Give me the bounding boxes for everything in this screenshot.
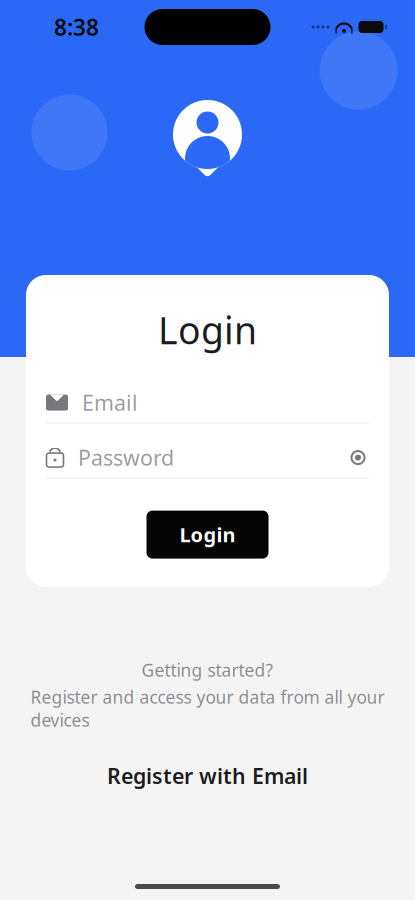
- button[interactable]: Register with Email: [89, 754, 326, 798]
- staticText: Email: [82, 388, 138, 417]
- staticText: Password: [78, 443, 174, 472]
- staticText: Login: [179, 521, 235, 548]
- button[interactable]: Login: [146, 511, 268, 559]
- staticText: Getting started?: [141, 659, 273, 682]
- staticText: Login: [158, 305, 257, 355]
- button[interactable]: Email: [26, 383, 389, 424]
- button[interactable]: Password: [26, 438, 389, 479]
- staticText: 8:38: [54, 12, 99, 42]
- staticText: Register and access your data from all y…: [30, 686, 384, 732]
- staticText: Register with Email: [107, 762, 308, 790]
